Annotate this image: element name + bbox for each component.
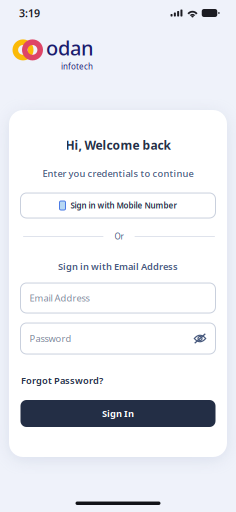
staticText: 3:19 xyxy=(19,6,40,20)
staticText: Hi, Welcome back xyxy=(65,137,170,153)
staticText: Forgot Password? xyxy=(21,374,103,387)
staticText: Sign In xyxy=(102,407,134,420)
staticText: Enter you credentials to continue xyxy=(42,167,193,180)
staticText: odan xyxy=(46,34,94,61)
button[interactable]: Show password xyxy=(193,333,206,344)
staticText: Or xyxy=(114,231,123,242)
staticText: Email Address xyxy=(29,292,89,304)
staticText: Sign in with Mobile Number xyxy=(70,200,176,211)
button[interactable]: Sign in with Mobile Number xyxy=(20,193,215,218)
staticText: infotech xyxy=(61,61,93,72)
staticText: Password xyxy=(29,332,71,345)
staticText: Sign in with Email Address xyxy=(58,260,178,273)
button[interactable]: Forgot Password? xyxy=(21,376,103,385)
button[interactable]: Sign In xyxy=(20,400,215,427)
